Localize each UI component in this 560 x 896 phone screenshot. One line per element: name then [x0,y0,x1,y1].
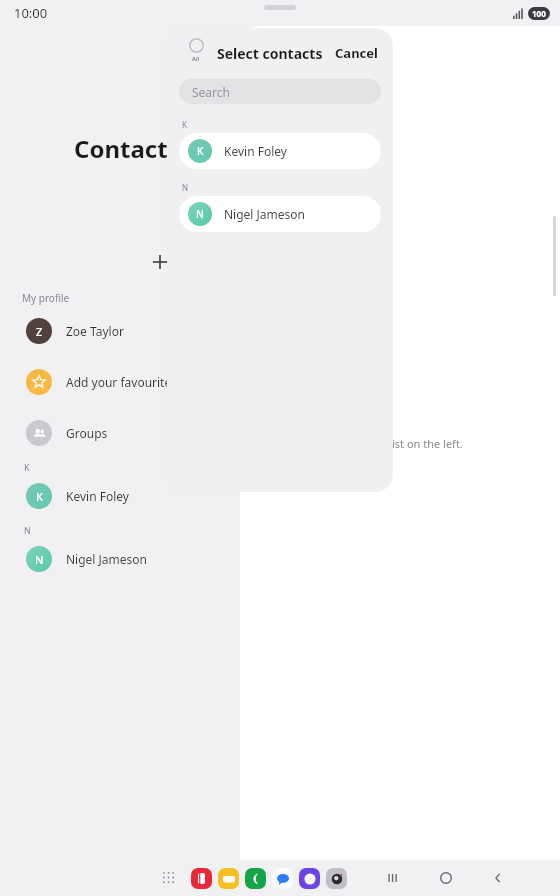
staticText: K [182,119,187,130]
staticText: All [192,55,200,63]
button[interactable]: Messages [272,868,293,889]
staticText: N [182,182,189,193]
button[interactable]: Groups [0,413,240,453]
staticText: N [35,552,44,567]
button[interactable]: Z [0,311,240,351]
staticText: Kevin Foley [224,143,287,159]
button[interactable]: Add your favourite contacts [0,362,240,402]
staticText: Select a contact from the list on the le… [258,436,463,451]
staticText: Z [36,324,43,339]
button[interactable]: Select all [181,38,211,63]
button[interactable]: Search [179,79,381,104]
staticText: N [24,524,31,536]
button[interactable]: Internet [299,868,320,889]
button[interactable]: Phone [245,868,266,889]
button[interactable]: Add contact [146,248,174,276]
staticText: 100 [532,8,546,19]
button[interactable]: Apps [156,865,182,891]
button[interactable]: Recents [368,860,420,896]
staticText: Contacts [74,132,180,165]
staticText: Groups [66,425,108,441]
staticText: Select contacts [217,44,323,63]
button[interactable]: K [0,476,240,516]
staticText: Search [192,84,230,100]
staticText: Nigel Jameson [224,206,306,222]
button[interactable]: K [179,133,381,169]
button[interactable]: Notes [191,868,212,889]
staticText: Cancel [335,44,378,62]
staticText: Add your favourite contacts [66,374,222,390]
button[interactable]: Back [472,860,524,896]
staticText: K [36,489,43,504]
staticText: Nigel Jameson [66,551,148,567]
staticText: K [24,461,30,473]
staticText: N [196,207,204,221]
button[interactable]: N [179,196,381,232]
button[interactable]: Home [420,860,472,896]
staticText: My profile [22,291,70,305]
staticText: K [197,144,204,158]
staticText: Kevin Foley [66,488,129,504]
staticText: 10:00 [14,4,48,22]
button[interactable]: Camera [326,868,347,889]
staticText: Zoe Taylor [66,323,124,339]
button[interactable]: Cancel [329,38,384,68]
button[interactable]: N [0,539,240,579]
button[interactable]: Files [218,868,239,889]
